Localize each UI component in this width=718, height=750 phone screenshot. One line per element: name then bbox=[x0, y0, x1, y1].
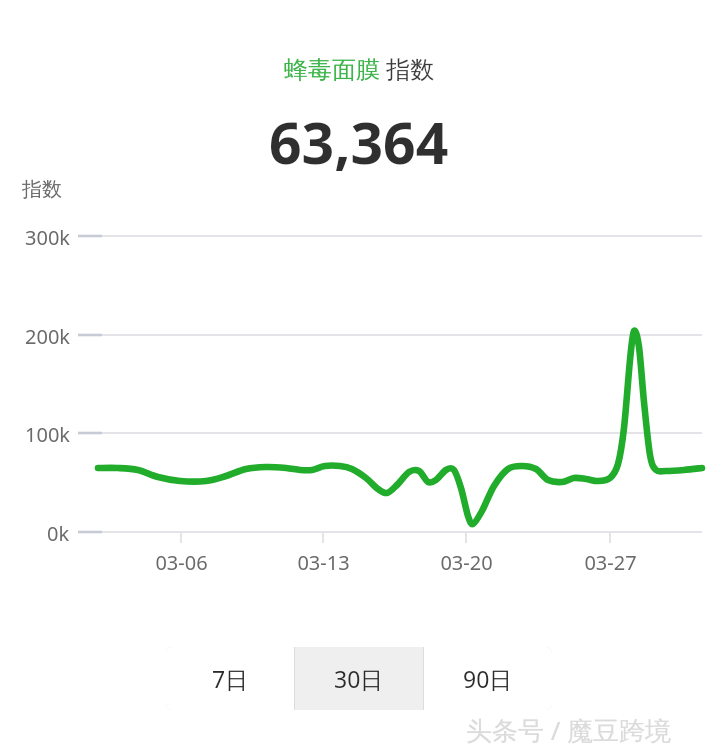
staticText: 03-20 bbox=[440, 549, 493, 576]
staticText: 0k bbox=[47, 520, 70, 547]
staticText: 蜂毒面膜 指数 bbox=[284, 52, 435, 85]
staticText: 30日 bbox=[334, 663, 384, 694]
staticText: 头条号 / 魔豆跨境 bbox=[466, 712, 672, 748]
button[interactable]: 90日 bbox=[424, 647, 552, 710]
staticText: 指数 bbox=[22, 177, 62, 202]
staticText: 200k bbox=[25, 323, 70, 350]
staticText: 63,364 bbox=[269, 103, 449, 181]
staticText: 03-06 bbox=[155, 549, 208, 576]
staticText: 03-13 bbox=[297, 549, 350, 576]
staticText: 03-27 bbox=[584, 549, 637, 576]
staticText: 7日 bbox=[212, 663, 249, 694]
button[interactable]: 30日 bbox=[295, 647, 423, 710]
staticText: 100k bbox=[25, 421, 70, 448]
staticText: 90日 bbox=[463, 663, 513, 694]
button[interactable]: 7日 bbox=[166, 647, 294, 710]
staticText: 300k bbox=[25, 224, 70, 251]
